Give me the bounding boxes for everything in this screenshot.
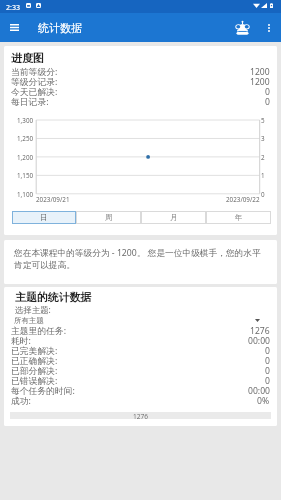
staticText: 每个任务的时间: <box>11 385 75 395</box>
staticText: 选择主题: <box>15 304 51 315</box>
staticText: 0 <box>261 190 265 199</box>
staticText: 您在本课程中的等级分为 - 1200。 您是一位中级棋手，您的水平肯定可以提高。 <box>14 247 268 271</box>
staticText: 1200 <box>250 76 270 86</box>
staticText: 进度图 <box>11 52 44 66</box>
staticText: 1 <box>261 171 265 180</box>
staticText: 周 <box>105 213 113 222</box>
staticText: 成功: <box>11 395 31 405</box>
staticText: 1,100 <box>17 190 34 199</box>
staticText: 主题的统计数据 <box>15 291 92 305</box>
staticText: 1,250 <box>17 134 34 143</box>
staticText: 1,300 <box>17 116 34 125</box>
staticText: 已正确解决: <box>11 355 58 365</box>
staticText: 5 <box>261 116 265 125</box>
button[interactable]: Open navigation drawer <box>0 13 29 42</box>
staticText: 0 <box>265 86 270 96</box>
button[interactable]: 日 <box>12 211 76 224</box>
staticText: 0 <box>265 365 270 375</box>
staticText: 统计数据 <box>38 21 82 35</box>
staticText: 已完美解决: <box>11 345 58 355</box>
staticText: 已部分解决: <box>11 365 58 375</box>
staticText: 0 <box>265 375 270 385</box>
staticText: 1,150 <box>17 171 34 180</box>
staticText: 2023/09/21 <box>36 195 70 204</box>
staticText: 3 <box>261 134 265 143</box>
staticText: 0 <box>265 96 270 106</box>
button[interactable]: 年 <box>206 211 271 224</box>
staticText: 耗时: <box>11 335 31 345</box>
staticText: 每日记录: <box>11 96 49 106</box>
staticText: 0 <box>265 355 270 365</box>
button[interactable]: Chess rating <box>228 13 256 42</box>
staticText: 2:33 <box>6 3 20 13</box>
staticText: 00:00 <box>248 335 270 345</box>
staticText: 00:00 <box>248 385 270 395</box>
staticText: 今天已解决: <box>11 86 58 96</box>
staticText: 1,200 <box>17 153 34 162</box>
staticText: 2 <box>261 153 265 162</box>
staticText: 所有主题 <box>14 316 44 325</box>
button[interactable]: 所有主题 <box>11 314 260 326</box>
staticText: 1200 <box>250 66 270 76</box>
staticText: 主题里的任务: <box>11 325 67 335</box>
staticText: 年 <box>235 213 243 222</box>
button[interactable]: 周 <box>76 211 141 224</box>
staticText: 1276 <box>250 325 270 335</box>
staticText: 已错误解决: <box>11 375 58 385</box>
staticText: 等级分记录: <box>11 76 58 86</box>
staticText: 日 <box>40 213 48 222</box>
staticText: 0% <box>257 395 270 405</box>
staticText: 月 <box>170 213 178 222</box>
staticText: 当前等级分: <box>11 66 58 76</box>
button[interactable]: More options <box>256 13 281 42</box>
staticText: 0 <box>265 345 270 355</box>
staticText: 1276 <box>133 412 149 419</box>
staticText: 2023/09/22 <box>226 195 260 204</box>
button[interactable]: 月 <box>141 211 206 224</box>
